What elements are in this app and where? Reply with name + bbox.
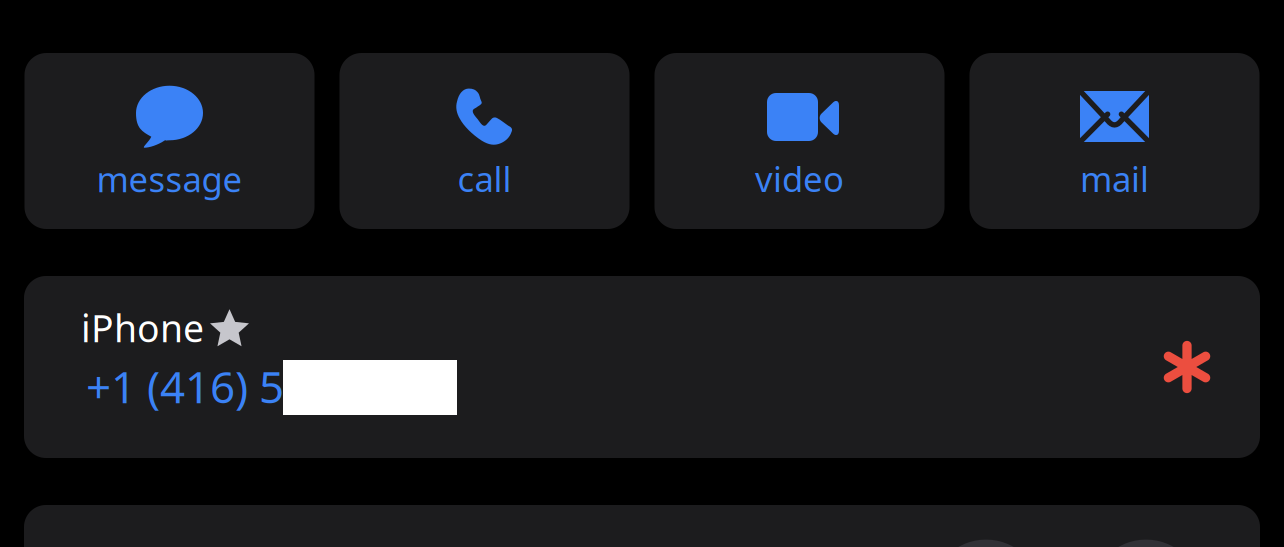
staticText: video bbox=[755, 155, 844, 201]
button[interactable]: message bbox=[24, 53, 314, 229]
button[interactable]: Linked contacts bbox=[24, 505, 1260, 547]
button[interactable]: mail bbox=[969, 53, 1259, 229]
button[interactable]: video bbox=[654, 53, 944, 229]
button[interactable]: iPhone, +1 (416) 5… bbox=[24, 276, 1260, 458]
button[interactable]: call bbox=[339, 53, 629, 229]
staticText: iPhone bbox=[81, 303, 204, 353]
staticText: message bbox=[96, 156, 242, 202]
staticText: mail bbox=[1080, 155, 1149, 201]
staticText: call bbox=[457, 155, 511, 201]
staticText: +1 (416) 5 bbox=[86, 357, 284, 415]
